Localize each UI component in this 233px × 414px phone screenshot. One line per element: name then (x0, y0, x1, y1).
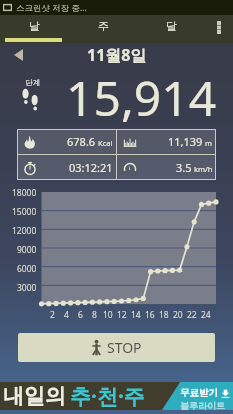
staticText: 15,914 (66, 65, 217, 124)
staticText: 15000 (12, 206, 37, 218)
staticText: 3.5 (176, 160, 192, 175)
staticText: 2 (50, 309, 55, 321)
button[interactable]: STOP (18, 333, 215, 362)
button[interactable]: Previous day (11, 48, 25, 62)
button[interactable]: 주 (69, 15, 137, 43)
staticText: 24 (201, 309, 211, 321)
staticText: 8 (92, 309, 97, 321)
button[interactable]: 내일의 (0, 382, 233, 410)
staticText: 6 (78, 309, 83, 321)
staticText: 단계 (25, 78, 40, 87)
staticText: 11월8일 (87, 44, 147, 66)
staticText: 달 (166, 19, 177, 33)
staticText: 날 (29, 19, 40, 33)
staticText: m (205, 138, 213, 148)
staticText: 12 (117, 309, 127, 321)
staticText: Kcal (98, 138, 113, 148)
staticText: 18 (159, 309, 169, 321)
button[interactable]: 달 (137, 15, 205, 43)
staticText: 16 (145, 309, 155, 321)
staticText: 20 (173, 309, 183, 321)
staticText: 4 (64, 309, 69, 321)
staticText: 678.6 (67, 134, 96, 149)
staticText: 12000 (12, 225, 37, 237)
staticText: 18000 (12, 187, 37, 199)
staticText: 내일의 (3, 383, 66, 409)
staticText: 주 (98, 19, 109, 33)
button[interactable]: 날 (0, 15, 69, 43)
staticText: 무료받기 (180, 387, 218, 399)
staticText: STOP (107, 338, 142, 357)
staticText: km/h (194, 164, 213, 174)
staticText: 14 (131, 309, 141, 321)
button[interactable]: More options (205, 15, 233, 43)
staticText: 추·천·주 (70, 382, 145, 410)
staticText: 블루라이트 필터 (180, 399, 233, 410)
staticText: 스크린샷 저장 중... (16, 2, 87, 14)
staticText: 11,139 (168, 134, 203, 149)
staticText: 9000 (17, 244, 37, 256)
staticText: 3000 (17, 282, 37, 294)
staticText: 6000 (17, 263, 37, 275)
staticText: 03:12:21 (69, 160, 113, 175)
staticText: 10 (103, 309, 113, 321)
staticText: 22 (187, 309, 197, 321)
